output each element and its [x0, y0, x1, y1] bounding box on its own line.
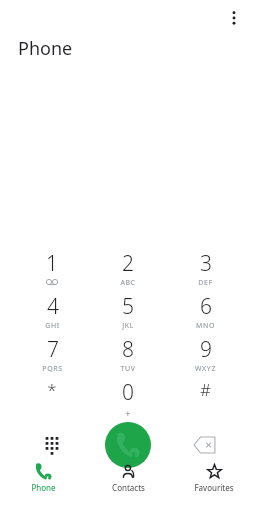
staticText: 3 — [200, 249, 212, 278]
button[interactable]: 5 — [100, 292, 156, 332]
button[interactable]: 1 — [24, 249, 80, 289]
button[interactable]: * — [24, 378, 80, 418]
staticText: DEF — [198, 278, 213, 288]
button[interactable]: Favourites — [171, 464, 256, 493]
button[interactable]: # — [177, 378, 233, 418]
staticText: Phone — [18, 36, 73, 61]
staticText: 1 — [46, 249, 58, 278]
staticText: Contacts — [112, 482, 145, 493]
staticText: WXYZ — [195, 364, 216, 374]
button[interactable]: Call — [105, 422, 151, 468]
button[interactable]: 4 — [24, 292, 80, 332]
button[interactable]: 7 — [24, 335, 80, 375]
staticText: TUV — [120, 364, 136, 374]
button[interactable]: Keypad — [32, 425, 72, 465]
button[interactable]: 6 — [177, 292, 233, 332]
staticText: 6 — [200, 292, 212, 321]
staticText: JKL — [122, 321, 134, 331]
staticText: PQRS — [42, 364, 63, 374]
staticText: 4 — [47, 292, 59, 321]
staticText: Phone — [31, 482, 56, 493]
button[interactable]: 2 — [100, 249, 156, 289]
staticText: MNO — [196, 321, 215, 331]
staticText: * — [47, 378, 57, 401]
staticText: Favourites — [194, 482, 234, 493]
staticText: 8 — [122, 335, 134, 364]
button[interactable]: Contacts — [86, 464, 171, 493]
button[interactable]: 0 — [100, 378, 156, 418]
staticText: 9 — [200, 335, 212, 364]
staticText: 5 — [122, 292, 134, 321]
staticText: 2 — [122, 249, 134, 278]
staticText: # — [200, 378, 211, 401]
button[interactable]: 8 — [100, 335, 156, 375]
button[interactable]: Backspace — [185, 425, 225, 465]
button[interactable]: 9 — [177, 335, 233, 375]
staticText: + — [125, 407, 131, 418]
staticText: ABC — [120, 278, 136, 288]
staticText: GHI — [45, 321, 60, 331]
staticText: 7 — [47, 335, 59, 364]
staticText: 0 — [122, 378, 134, 407]
button[interactable]: More options — [220, 4, 248, 32]
button[interactable]: Phone — [0, 464, 86, 493]
button[interactable]: 3 — [177, 249, 233, 289]
